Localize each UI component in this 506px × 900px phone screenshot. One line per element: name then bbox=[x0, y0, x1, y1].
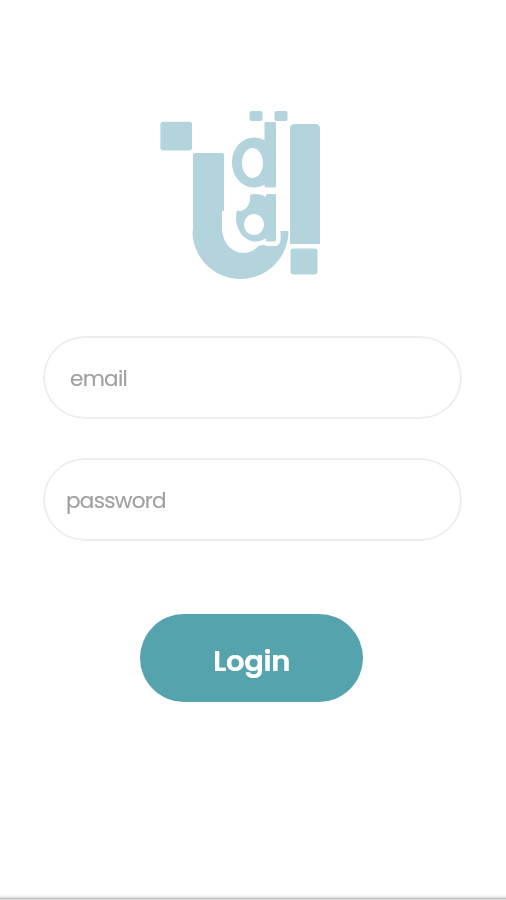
staticText: password bbox=[66, 485, 166, 515]
button[interactable]: password bbox=[43, 458, 462, 541]
button[interactable]: Login bbox=[140, 614, 363, 702]
other: App logo bbox=[150, 100, 340, 290]
button[interactable]: email bbox=[43, 336, 462, 419]
staticText: Login bbox=[213, 641, 291, 682]
staticText: email bbox=[70, 363, 128, 393]
